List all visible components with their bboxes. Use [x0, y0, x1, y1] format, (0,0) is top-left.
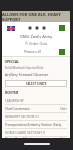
staticText: Transportation/Infantry Section (Early S… — [5, 123, 67, 127]
staticText: GMU Zaid's Army — [20, 34, 53, 39]
staticText: HOME GUARD SECTION (1) — [5, 131, 46, 135]
staticText: Platoon #1 — [24, 49, 42, 54]
staticText: Chief Lieutenant — [5, 107, 30, 111]
staticText: Artillery Forward Observer — [5, 72, 49, 77]
staticText: LEADERSHIP — [5, 99, 24, 103]
staticText: SPECIAL — [5, 59, 20, 64]
staticText: Field Marshal's Special Rule — [5, 66, 44, 70]
button[interactable]: Transportation/Infantry Section (Early S… — [5, 121, 67, 129]
button[interactable]: INFANTRY SECTION (1) — [5, 113, 67, 121]
staticText: ALLOWS FOR ONE BLK. HEAVY SUPPORT — [2, 12, 70, 22]
staticText: SELECT UNITS — [26, 82, 47, 86]
button[interactable]: LEADERSHIP — [5, 97, 67, 105]
staticText: INFANTRY SECTION (1) — [5, 115, 39, 119]
staticText: Slots — [60, 137, 67, 138]
staticText: Slots — [60, 107, 67, 111]
button[interactable]: ALLOWS FOR ONE BLK. HEAVY SUPPORT — [2, 11, 70, 22]
staticText: © Order Chat — [25, 41, 48, 46]
button[interactable]: SELECT UNITS — [5, 80, 67, 87]
staticText: Home Guard Section — [5, 137, 36, 138]
button[interactable]: Home Guard Section — [5, 137, 67, 138]
staticText: ROSTER — [5, 90, 19, 95]
button[interactable]: HOME GUARD SECTION (1) — [5, 129, 67, 137]
button[interactable]: Chief Lieutenant — [5, 105, 67, 113]
